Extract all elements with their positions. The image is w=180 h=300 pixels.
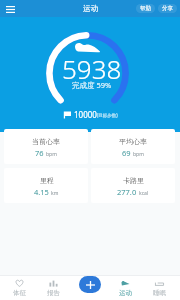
staticText: 睡眠 <box>153 289 166 297</box>
staticText: 报告 <box>47 289 60 297</box>
staticText: 运动 <box>83 4 98 13</box>
staticText: kcal <box>139 190 149 197</box>
staticText: km <box>51 190 59 197</box>
staticText: 76 <box>35 148 44 158</box>
button[interactable]: 当前心率 <box>4 129 88 164</box>
button[interactable]: 体征 <box>2 279 36 297</box>
staticText: 分享 <box>162 5 173 12</box>
staticText: bpm <box>133 151 144 158</box>
staticText: 完成度 59% <box>72 80 112 90</box>
staticText: 5938 <box>62 51 122 86</box>
staticText: 运动 <box>119 289 132 297</box>
button[interactable]: 报告 <box>36 279 70 297</box>
button[interactable]: 运动 <box>108 279 142 297</box>
button[interactable]: 卡路里 <box>91 168 175 203</box>
button[interactable]: Add <box>79 276 101 293</box>
staticText: 277.0 <box>117 187 137 197</box>
staticText: 平均心率 <box>119 137 147 146</box>
staticText: 当前心率 <box>32 137 60 146</box>
staticText: 69 <box>122 148 131 158</box>
staticText: 体征 <box>13 289 26 297</box>
staticText: 里程 <box>40 176 54 185</box>
staticText: 帮助 <box>140 5 151 12</box>
staticText: (目标步数) <box>97 112 118 118</box>
staticText: bpm <box>46 151 57 158</box>
staticText: 4.15 <box>34 187 49 197</box>
button[interactable]: Menu <box>3 2 17 16</box>
button[interactable]: 睡眠 <box>142 279 176 297</box>
staticText: 10000 <box>74 109 97 120</box>
staticText: 卡路里 <box>123 176 144 185</box>
button[interactable]: 平均心率 <box>91 129 175 164</box>
button[interactable]: 分享 <box>158 4 177 13</box>
button[interactable]: 帮助 <box>136 4 155 13</box>
button[interactable]: 里程 <box>4 168 88 203</box>
